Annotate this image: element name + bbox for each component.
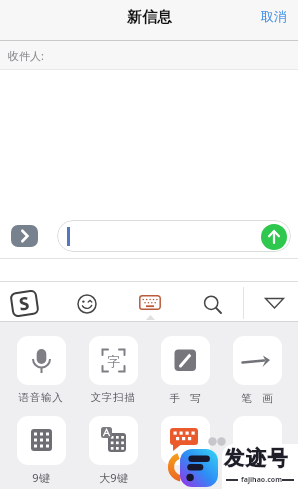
staticText: 手 写 [169, 391, 201, 405]
staticText: 发迹号 [224, 446, 290, 471]
button[interactable] [161, 336, 210, 385]
staticText: 新信息 [127, 8, 172, 27]
button[interactable] [139, 295, 161, 310]
staticText: S [17, 290, 32, 317]
button[interactable] [17, 336, 66, 385]
button[interactable] [89, 416, 138, 465]
button[interactable]: 字 [89, 336, 138, 385]
staticText: 9键 [32, 470, 50, 485]
button[interactable] [57, 220, 291, 252]
staticText: fajihao.com [241, 475, 282, 485]
staticText: 笔 画 [241, 391, 273, 405]
staticText: 大9键 [99, 470, 128, 485]
button[interactable]: 取消 [261, 8, 287, 24]
button[interactable] [17, 416, 66, 465]
button[interactable]: 收件人: [0, 41, 298, 69]
button[interactable]: S [9, 289, 40, 318]
button[interactable] [261, 224, 287, 250]
button[interactable] [77, 294, 97, 314]
staticText: 语音输入 [18, 391, 64, 404]
button[interactable] [233, 416, 282, 465]
button[interactable] [161, 416, 210, 465]
staticText: 文字扫描 [90, 391, 136, 404]
staticText: 取消 [261, 8, 287, 24]
button[interactable] [11, 225, 38, 247]
button[interactable] [264, 297, 285, 309]
staticText: 字 [107, 353, 120, 369]
button[interactable] [203, 295, 223, 315]
button[interactable] [233, 336, 282, 385]
staticText: 收件人: [8, 48, 44, 63]
